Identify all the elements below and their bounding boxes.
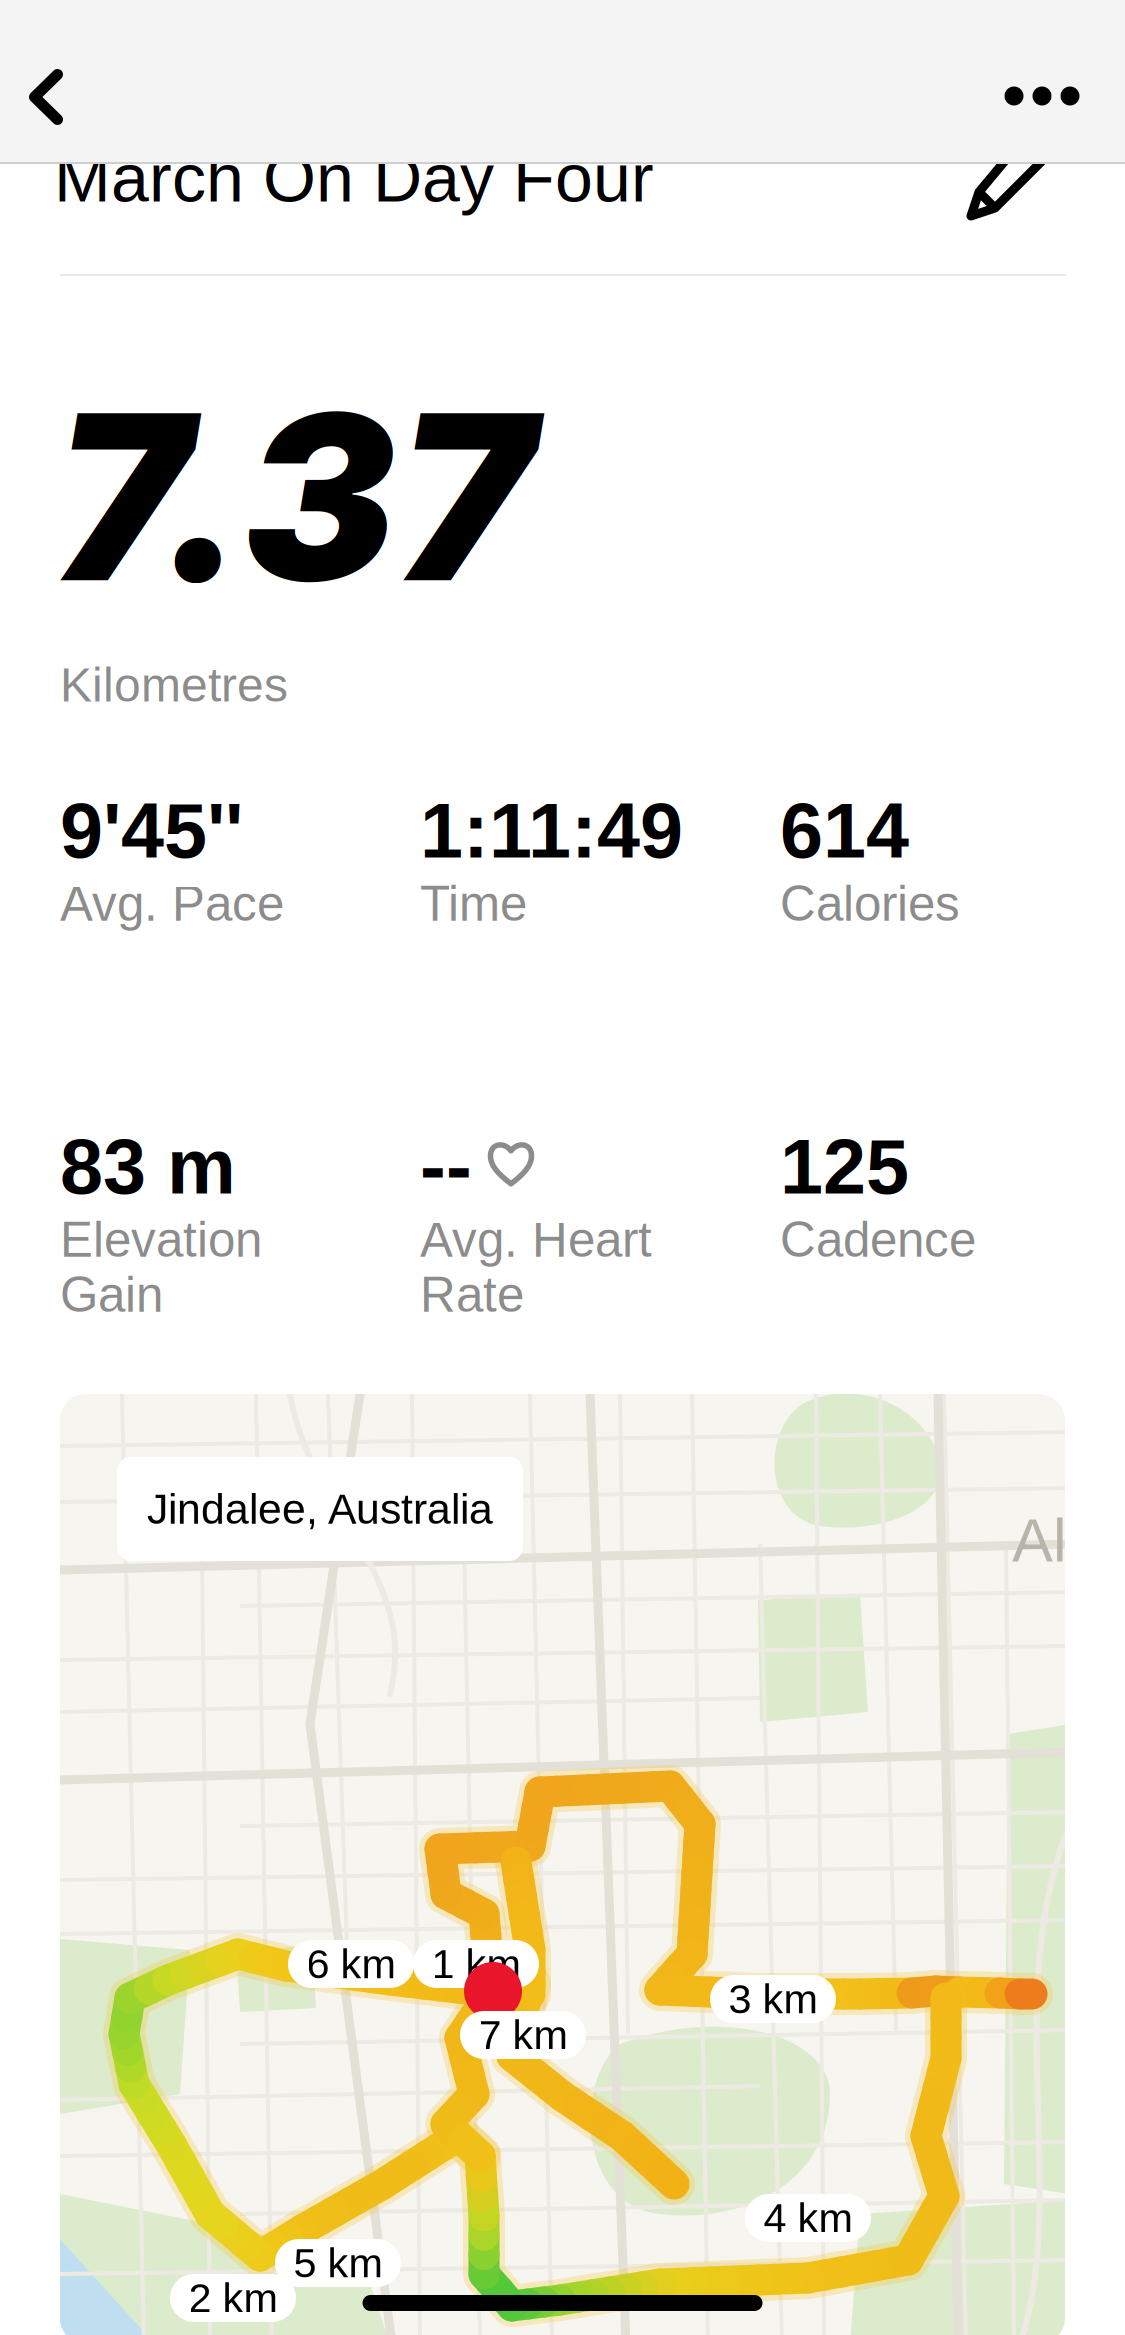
staticText: 2 km	[188, 2275, 277, 2321]
button[interactable]: Back	[16, 57, 76, 137]
staticText: 1 km	[431, 1941, 520, 1987]
staticText: 5 km	[293, 2240, 382, 2286]
staticText: Avg. Pace	[60, 876, 284, 931]
staticText: Avg. Heart Rate	[420, 1212, 652, 1322]
button[interactable]: More options	[992, 61, 1092, 131]
staticText: Kilometres	[60, 658, 288, 712]
staticText: 4 km	[763, 2195, 852, 2241]
staticText: 125	[780, 1124, 909, 1210]
staticText: Cadence	[780, 1212, 976, 1267]
staticText: 3 km	[728, 1976, 817, 2022]
staticText: Elevation Gain	[60, 1212, 262, 1322]
staticText: 614	[780, 788, 909, 874]
staticText: 83 m	[60, 1124, 236, 1210]
staticText: 6 km	[306, 1941, 395, 1987]
staticText: Al	[1012, 1506, 1067, 1574]
staticText: 7.37	[54, 358, 533, 635]
button[interactable]: Edit name	[955, 106, 1077, 230]
staticText: Calories	[780, 876, 960, 931]
staticText: 7 km	[478, 2012, 567, 2058]
staticText: Jindalee, Australia	[147, 1485, 493, 1533]
staticText: --	[420, 1124, 472, 1210]
staticText: March On Day Four	[54, 140, 654, 216]
staticText: 1:11:49	[420, 788, 683, 874]
staticText: Time	[420, 876, 527, 931]
staticText: 9'45''	[60, 788, 243, 874]
